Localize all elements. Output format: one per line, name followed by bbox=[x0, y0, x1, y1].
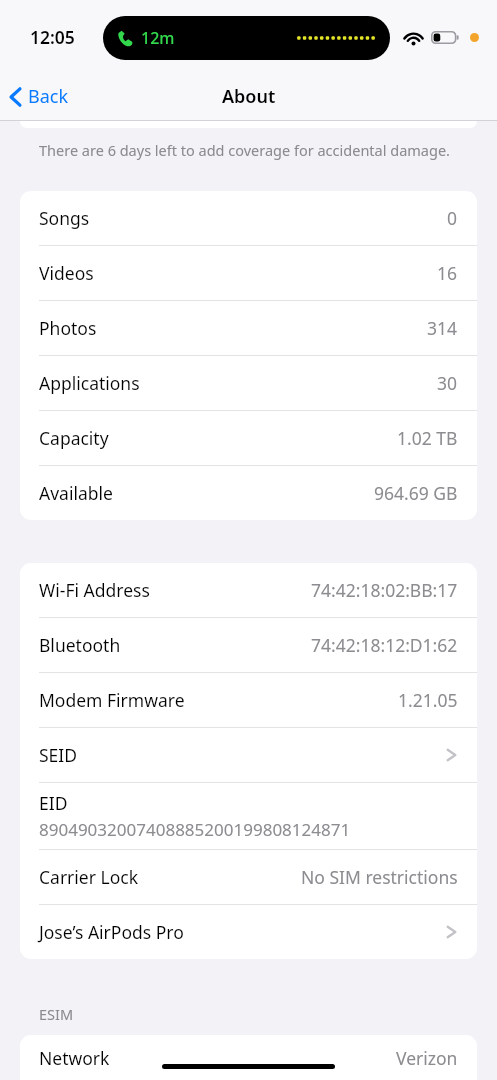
staticText: SEID bbox=[39, 743, 78, 767]
staticText: ESIM bbox=[39, 1004, 74, 1024]
staticText: 964.69 GB bbox=[374, 481, 458, 505]
button[interactable]: EID bbox=[20, 783, 477, 849]
staticText: Available bbox=[39, 481, 113, 505]
staticText: Network bbox=[39, 1046, 110, 1070]
staticText: Carrier Lock bbox=[39, 865, 138, 889]
button[interactable]: Active call 12 minutes bbox=[103, 16, 390, 60]
staticText: 12m bbox=[141, 27, 175, 49]
staticText: Applications bbox=[39, 371, 140, 395]
button[interactable]: Available bbox=[20, 466, 477, 520]
other: Wi-Fi bbox=[402, 29, 425, 45]
staticText: Modem Firmware bbox=[39, 688, 185, 712]
button[interactable]: Jose’s AirPods Pro bbox=[20, 905, 477, 959]
staticText: Capacity bbox=[39, 426, 109, 450]
button[interactable]: SEID bbox=[20, 728, 477, 782]
staticText: 16 bbox=[437, 261, 458, 285]
button[interactable]: Videos bbox=[20, 246, 477, 300]
button[interactable]: Network bbox=[20, 1035, 477, 1080]
staticText: 314 bbox=[427, 316, 458, 340]
staticText: No SIM restrictions bbox=[301, 865, 458, 889]
button[interactable]: Applications bbox=[20, 356, 477, 410]
button[interactable]: Carrier Lock bbox=[20, 850, 477, 904]
staticText: 30 bbox=[437, 371, 458, 395]
button[interactable]: Photos bbox=[20, 301, 477, 355]
button[interactable]: Modem Firmware bbox=[20, 673, 477, 727]
staticText: 74:42:18:12:D1:62 bbox=[311, 633, 458, 657]
staticText: Bluetooth bbox=[39, 633, 121, 657]
staticText: 89049032007408885200199808124871 bbox=[39, 818, 351, 841]
staticText: Photos bbox=[39, 316, 97, 340]
staticText: 12:05 bbox=[30, 25, 75, 49]
button[interactable]: Back bbox=[0, 77, 81, 116]
button[interactable]: Songs bbox=[20, 191, 477, 245]
staticText: About bbox=[222, 84, 276, 109]
staticText: 0 bbox=[447, 206, 458, 230]
button[interactable]: Bluetooth bbox=[20, 618, 477, 672]
staticText: 74:42:18:02:BB:17 bbox=[311, 578, 458, 602]
staticText: There are 6 days left to add coverage fo… bbox=[39, 140, 450, 160]
button[interactable]: Wi-Fi Address bbox=[20, 563, 477, 617]
staticText: 1.02 TB bbox=[397, 426, 458, 450]
staticText: EID bbox=[39, 791, 68, 815]
button[interactable]: Capacity bbox=[20, 411, 477, 465]
staticText: Videos bbox=[39, 261, 94, 285]
staticText: Jose’s AirPods Pro bbox=[39, 920, 184, 944]
staticText: Back bbox=[28, 84, 69, 109]
staticText: Wi-Fi Address bbox=[39, 578, 150, 602]
staticText: 1.21.05 bbox=[398, 688, 458, 712]
staticText: Songs bbox=[39, 206, 90, 230]
staticText: Verizon bbox=[396, 1046, 458, 1070]
